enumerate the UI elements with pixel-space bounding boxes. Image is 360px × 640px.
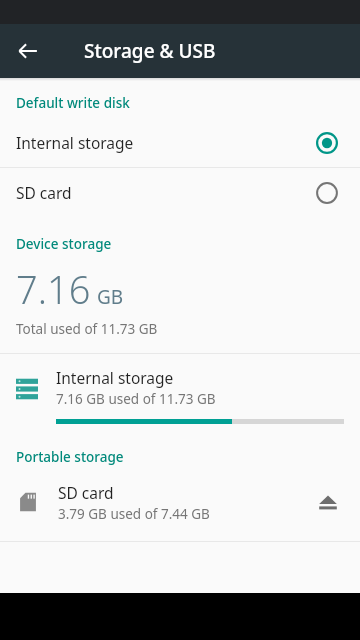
staticText: 7.16: [16, 263, 91, 315]
button[interactable]: Internal storage: [0, 118, 360, 167]
staticText: 7.16 GB used of 11.73 GB: [56, 390, 216, 408]
staticText: GB: [97, 284, 124, 310]
button[interactable]: SD card: [0, 168, 360, 217]
button[interactable]: SD card: [0, 474, 360, 530]
staticText: Internal storage: [16, 132, 307, 153]
button[interactable]: Back: [4, 27, 52, 75]
staticText: Portable storage: [16, 448, 124, 466]
button[interactable]: Eject SD card: [306, 480, 350, 524]
staticText: Storage & USB: [84, 38, 216, 64]
staticText: Default write disk: [16, 94, 130, 112]
staticText: Device storage: [16, 235, 112, 253]
staticText: SD card: [58, 482, 114, 503]
staticText: SD card: [16, 182, 307, 203]
staticText: Internal storage: [56, 367, 174, 388]
staticText: Total used of 11.73 GB: [16, 320, 158, 338]
button[interactable]: Internal storage: [0, 354, 360, 432]
staticText: 3.79 GB used of 7.44 GB: [58, 505, 210, 523]
